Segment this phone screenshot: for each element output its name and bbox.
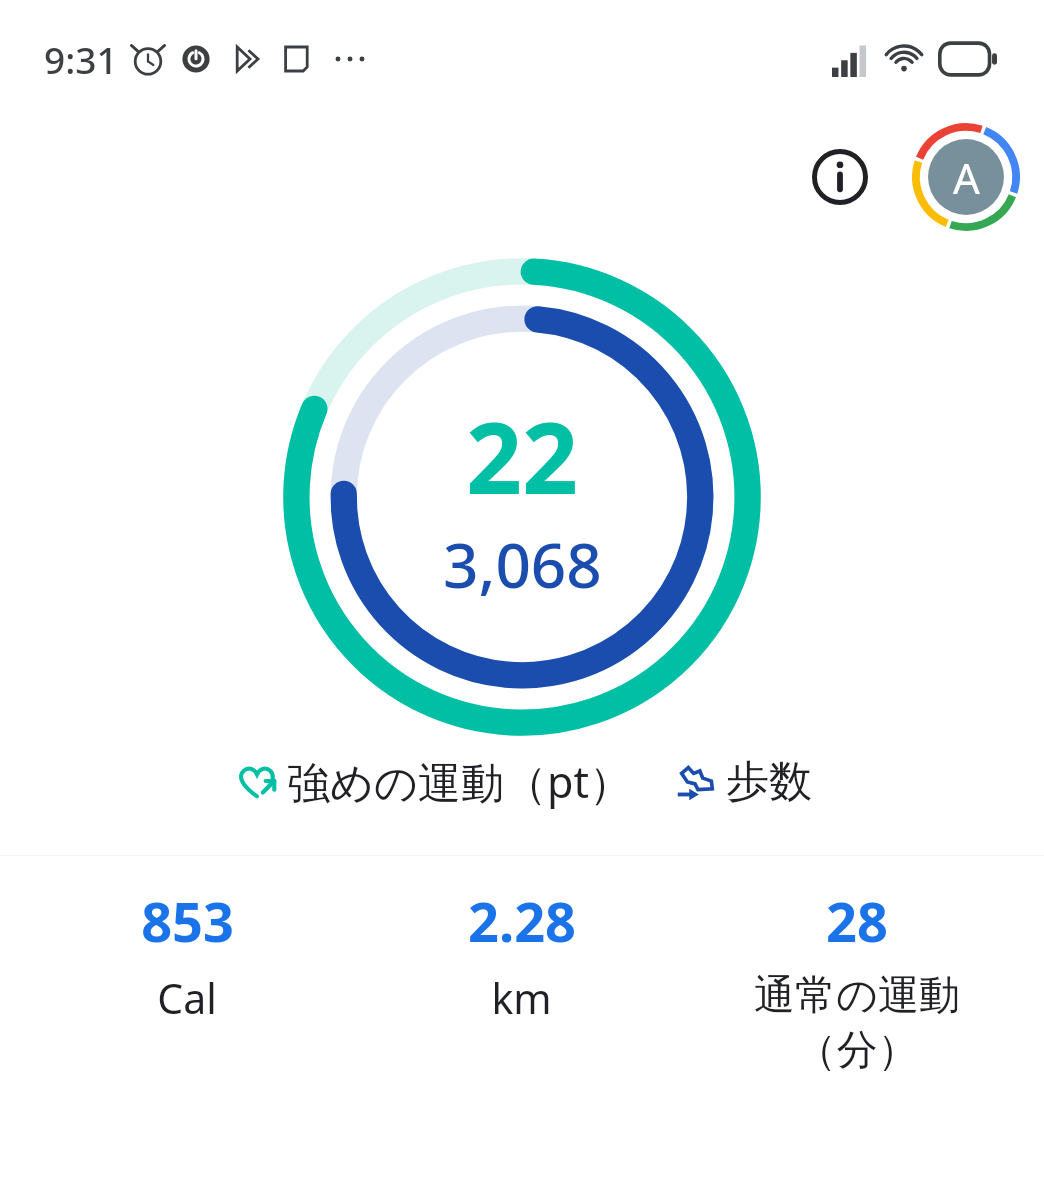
staticText: Cal bbox=[157, 970, 217, 1026]
staticText: km bbox=[491, 970, 552, 1026]
staticText: 通常の運動 （分） bbox=[754, 970, 960, 1076]
staticText: 9:31 bbox=[44, 34, 118, 84]
staticText: A bbox=[953, 149, 980, 206]
staticText: 28 bbox=[826, 884, 888, 958]
button[interactable]: 853 bbox=[20, 884, 354, 1026]
button[interactable]: 2.28 bbox=[354, 884, 689, 1026]
button[interactable]: 28 bbox=[689, 884, 1024, 1076]
button[interactable]: 強めの運動（pt） bbox=[233, 752, 632, 811]
staticText: 歩数 bbox=[726, 755, 812, 809]
staticText: 強めの運動（pt） bbox=[287, 752, 632, 811]
staticText: 853 bbox=[141, 884, 234, 958]
staticText: 22 bbox=[466, 389, 579, 522]
button[interactable]: Account bbox=[908, 119, 1024, 235]
staticText: 2.28 bbox=[468, 884, 576, 958]
staticText: 3,068 bbox=[443, 522, 602, 606]
button[interactable]: 歩数 bbox=[672, 755, 812, 809]
button[interactable]: Info bbox=[796, 133, 884, 221]
